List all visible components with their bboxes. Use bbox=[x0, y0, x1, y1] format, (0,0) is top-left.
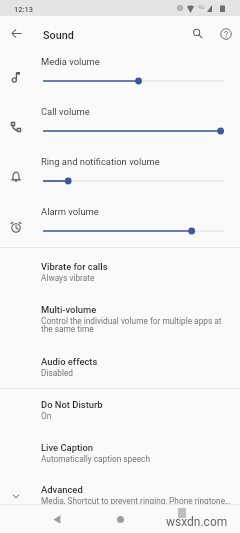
staticText: Automatically caption speech bbox=[41, 454, 150, 464]
staticText: Media volume bbox=[41, 56, 240, 67]
button[interactable]: Back bbox=[6, 23, 27, 44]
button[interactable]: Help bbox=[215, 23, 236, 44]
button[interactable]: Multi-volume bbox=[0, 304, 240, 333]
staticText: Multi-volume bbox=[41, 304, 97, 315]
staticText: Ring and notification volume bbox=[41, 156, 240, 167]
staticText: Control the individual volume for multip… bbox=[41, 316, 222, 326]
staticText: Media, Shortcut to prevent ringing, Phon… bbox=[41, 496, 231, 506]
staticText: Sound bbox=[43, 29, 74, 42]
button[interactable]: Home bbox=[110, 509, 130, 529]
button[interactable]: Do Not Disturb bbox=[0, 399, 240, 420]
button[interactable]: Search bbox=[187, 23, 208, 44]
staticText: Always vibrate bbox=[41, 273, 95, 283]
staticText: Call volume bbox=[41, 106, 240, 117]
staticText: Audio effects bbox=[41, 356, 98, 367]
staticText: 12:13 bbox=[14, 5, 34, 14]
staticText: Alarm volume bbox=[41, 206, 240, 217]
staticText: Vibrate for calls bbox=[41, 261, 108, 272]
staticText: Disabled bbox=[41, 368, 74, 378]
button[interactable]: Alarm volume bbox=[0, 202, 240, 252]
button[interactable]: Vibrate for calls bbox=[0, 261, 240, 282]
staticText: Do Not Disturb bbox=[41, 399, 103, 410]
button[interactable]: Ring and notification volume bbox=[0, 152, 240, 202]
staticText: the same time bbox=[41, 324, 94, 334]
staticText: On bbox=[41, 411, 52, 421]
staticText: Live Caption bbox=[41, 442, 94, 453]
staticText: wsxdn.com bbox=[166, 515, 228, 529]
button[interactable]: Live Caption bbox=[0, 442, 240, 463]
button[interactable]: Media volume bbox=[0, 52, 240, 102]
button[interactable]: Back bbox=[46, 509, 66, 529]
button[interactable]: Advanced bbox=[0, 484, 240, 509]
staticText: 4G bbox=[198, 4, 205, 10]
button[interactable]: Audio effects bbox=[0, 356, 240, 377]
button[interactable]: Call volume bbox=[0, 102, 240, 152]
staticText: Advanced bbox=[41, 484, 83, 495]
